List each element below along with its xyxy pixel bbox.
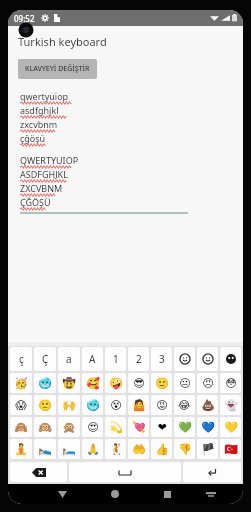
staticText: Ç — [42, 352, 49, 366]
button[interactable]: Enter — [183, 462, 241, 482]
button[interactable]: 😐 — [174, 373, 195, 393]
button[interactable]: 🙂 — [151, 373, 172, 393]
button[interactable]: 🤪 — [105, 373, 126, 393]
staticText: ZXCVBNM — [20, 182, 63, 194]
button[interactable]: Backspace — [10, 462, 67, 482]
staticText: 🇹🇷 — [224, 443, 238, 456]
button[interactable]: Recent apps — [151, 484, 184, 504]
button[interactable]: 💙 — [197, 417, 218, 437]
button[interactable]: 🙁 — [34, 395, 56, 415]
button[interactable]: 💛 — [220, 417, 241, 437]
staticText: 3 — [159, 352, 165, 366]
button[interactable]: Ç — [34, 347, 56, 371]
button[interactable]: 🥶 — [34, 373, 56, 393]
button[interactable]: 🤠 — [58, 373, 80, 393]
staticText: 😍 — [87, 421, 99, 434]
staticText: zxcvbnm — [20, 118, 58, 130]
button[interactable]: 🙊 — [58, 417, 80, 437]
staticText: 🙏 — [86, 443, 100, 456]
button[interactable]: 🏴 — [197, 439, 218, 459]
staticText: 🤠 — [62, 377, 76, 390]
staticText: 🥳 — [14, 377, 28, 390]
button[interactable]: 👻 — [220, 395, 241, 415]
staticText: ç — [19, 352, 24, 366]
button[interactable]: Switch keyboard — [194, 484, 227, 504]
staticText: çğöşü — [20, 132, 46, 144]
staticText: 😂 — [178, 399, 191, 412]
button[interactable]: 😎 — [128, 373, 149, 393]
staticText: 1 — [113, 352, 119, 366]
button[interactable]: Emoji 1 — [174, 347, 195, 371]
button[interactable]: A — [82, 347, 103, 371]
button[interactable]: KLAVYEYİ DEĞİŞTİR — [18, 59, 97, 79]
button[interactable]: Emoji 2 — [197, 347, 218, 371]
button[interactable]: 🤾 — [105, 439, 126, 459]
staticText: 😐 — [179, 377, 191, 390]
staticText: 🤲 — [132, 443, 146, 456]
button[interactable]: Space — [69, 462, 181, 482]
staticText: 🛏 — [62, 443, 76, 456]
button[interactable]: 😳 — [220, 373, 241, 393]
button[interactable]: 🙏 — [82, 439, 103, 459]
button[interactable]: 1 — [105, 347, 126, 371]
button[interactable]: 🤷 — [128, 395, 149, 415]
staticText: 🙂 — [155, 377, 169, 390]
button[interactable]: 🛏 — [58, 439, 80, 459]
staticText: 😠 — [202, 377, 214, 390]
button[interactable]: 🛌 — [34, 439, 56, 459]
staticText: 🥶 — [86, 399, 100, 412]
button[interactable]: Back — [46, 484, 78, 504]
button[interactable]: a — [58, 347, 80, 371]
staticText: 🙈 — [14, 421, 28, 434]
staticText: A — [89, 352, 96, 366]
staticText: 😡 — [156, 399, 168, 412]
staticText: 🙊 — [62, 421, 76, 434]
button[interactable]: ç — [10, 347, 32, 371]
button[interactable]: 👍 — [151, 439, 172, 459]
button[interactable]: 🙌 — [58, 395, 80, 415]
staticText: QWERTYUIOP — [20, 154, 79, 166]
button[interactable]: 😡 — [151, 395, 172, 415]
button[interactable]: 😍 — [82, 417, 103, 437]
button[interactable]: 🤲 — [128, 439, 149, 459]
staticText: 🤷 — [132, 399, 146, 412]
staticText: 👍 — [155, 443, 169, 456]
staticText: 😎 — [133, 377, 145, 390]
staticText: 2 — [136, 352, 142, 366]
button[interactable]: 🇹🇷 — [220, 439, 241, 459]
button[interactable]: 2 — [128, 347, 149, 371]
button[interactable]: Emoji 3 — [220, 347, 241, 371]
staticText: ❤️ — [157, 421, 167, 434]
button[interactable]: 🙈 — [10, 417, 32, 437]
button[interactable]: Home — [98, 484, 131, 504]
button[interactable]: 💩 — [197, 395, 218, 415]
button[interactable]: 3 — [151, 347, 172, 371]
staticText: 🧘 — [14, 443, 28, 456]
staticText: asdfghjkl — [20, 104, 59, 116]
button[interactable]: ❤️ — [151, 417, 172, 437]
button[interactable]: 🧘 — [10, 439, 32, 459]
staticText: 🙁 — [38, 399, 52, 412]
staticText: 🥰 — [86, 377, 100, 390]
button[interactable]: 💫 — [105, 417, 126, 437]
staticText: 💘 — [132, 421, 146, 434]
button[interactable]: 😠 — [197, 373, 218, 393]
staticText: a — [66, 352, 72, 366]
button[interactable]: 🥰 — [82, 373, 103, 393]
staticText: 09:52 — [14, 13, 35, 24]
button[interactable]: 😱 — [10, 395, 32, 415]
button[interactable]: 🥶 — [82, 395, 103, 415]
staticText: 💫 — [109, 421, 123, 434]
staticText: Turkish keyboard — [18, 34, 107, 49]
staticText: KLAVYEYİ DEĞİŞTİR — [25, 64, 90, 74]
button[interactable]: 😂 — [174, 395, 195, 415]
button[interactable]: 😵 — [105, 395, 126, 415]
button[interactable]: 🙉 — [34, 417, 56, 437]
staticText: 🤪 — [109, 377, 123, 390]
button[interactable]: 💘 — [128, 417, 149, 437]
staticText: 🤾 — [109, 443, 123, 456]
staticText: 💙 — [201, 421, 215, 434]
button[interactable]: 🥳 — [10, 373, 32, 393]
button[interactable]: 💚 — [174, 417, 195, 437]
button[interactable]: 👎 — [174, 439, 195, 459]
